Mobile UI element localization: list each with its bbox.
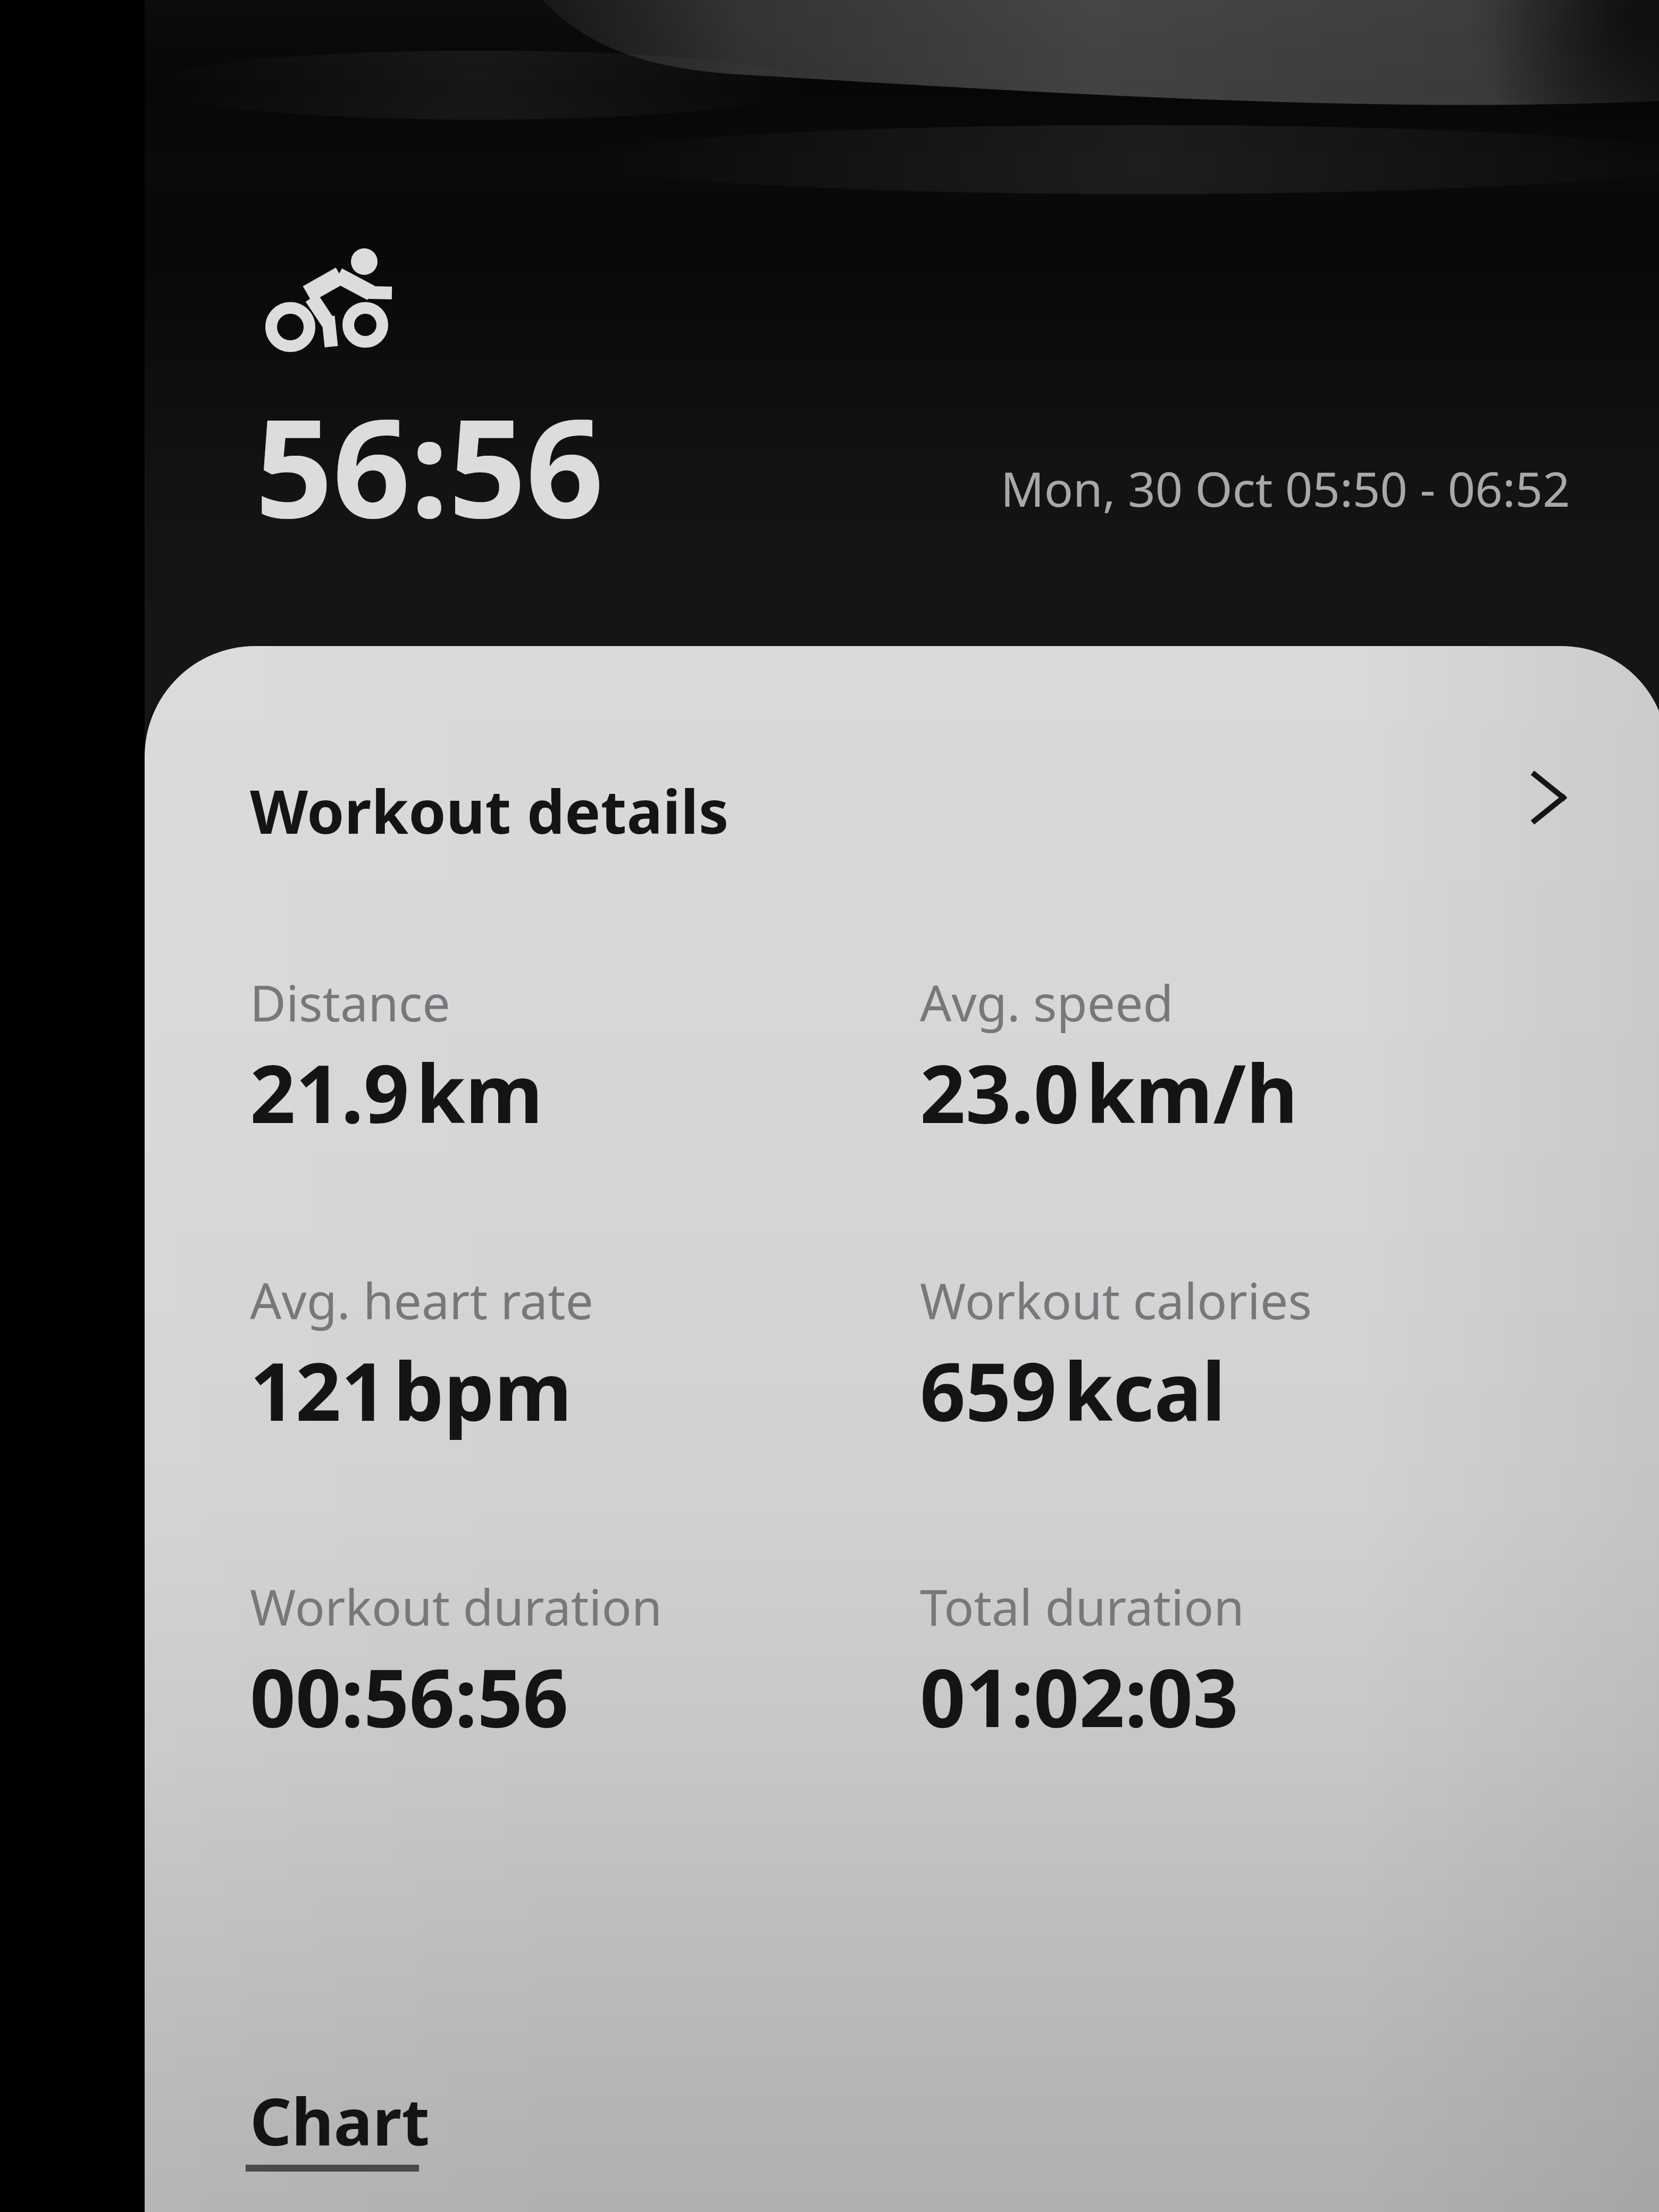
- staticText: 23.0: [920, 1038, 1079, 1146]
- staticText: 56:56: [255, 372, 604, 557]
- staticText: 21.9: [250, 1038, 409, 1146]
- staticText: Chart: [250, 2076, 430, 2165]
- button[interactable]: Chart: [246, 2076, 426, 2172]
- staticText: km/h: [1086, 1038, 1298, 1146]
- other: Cycling workout: [261, 239, 399, 362]
- staticText: 00:56:56: [250, 1642, 569, 1750]
- other: Open workout details: [1507, 758, 1587, 837]
- staticText: 659: [920, 1336, 1057, 1444]
- staticText: 01:02:03: [920, 1642, 1239, 1750]
- staticText: 121: [250, 1336, 387, 1444]
- staticText: kcal: [1063, 1336, 1226, 1444]
- staticText: Workout details: [250, 769, 729, 851]
- staticText: Mon, 30 Oct 05:50 - 06:52: [1001, 456, 1570, 521]
- staticText: bpm: [393, 1336, 572, 1444]
- button[interactable]: Workout details: [145, 728, 1659, 888]
- staticText: Total duration: [920, 1573, 1245, 1640]
- staticText: Workout calories: [920, 1267, 1312, 1334]
- staticText: Avg. speed: [920, 969, 1174, 1036]
- staticText: km: [416, 1038, 543, 1146]
- staticText: Workout duration: [250, 1573, 663, 1640]
- staticText: Avg. heart rate: [250, 1267, 593, 1334]
- staticText: Distance: [250, 969, 450, 1036]
